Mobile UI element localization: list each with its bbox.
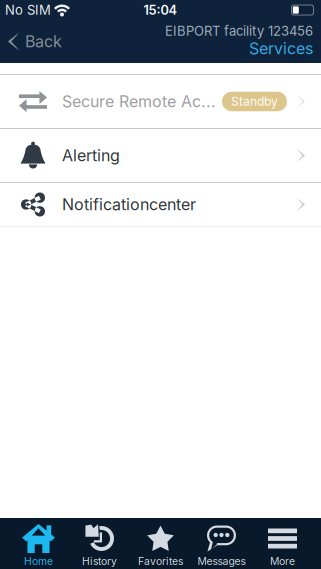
button[interactable]: Favorites xyxy=(130,518,191,569)
staticText: 15:04 xyxy=(143,2,177,18)
staticText: Notificationcenter xyxy=(62,195,196,214)
staticText: Secure Remote Ac... xyxy=(62,92,216,111)
staticText: Favorites xyxy=(138,555,183,568)
button[interactable]: More xyxy=(252,518,313,569)
button[interactable]: Messages xyxy=(191,518,252,569)
staticText: No SIM xyxy=(5,2,51,18)
staticText: More xyxy=(270,555,295,568)
staticText: Standby xyxy=(231,94,278,109)
button[interactable]: Back xyxy=(0,20,62,63)
button[interactable]: History xyxy=(69,518,130,569)
button[interactable]: Alerting xyxy=(0,129,321,182)
staticText: History xyxy=(82,555,117,568)
button[interactable]: Home xyxy=(8,518,69,569)
button[interactable]: Secure Remote Ac... xyxy=(0,75,321,128)
staticText: Home xyxy=(24,555,53,568)
staticText: Messages xyxy=(197,555,245,568)
button[interactable]: Notificationcenter xyxy=(0,183,321,226)
staticText: Services xyxy=(249,39,313,58)
button[interactable]: Services xyxy=(249,39,313,58)
staticText: Back xyxy=(25,32,62,51)
staticText: Alerting xyxy=(62,146,120,165)
staticText: EIBPORT facility 123456 xyxy=(165,23,313,39)
